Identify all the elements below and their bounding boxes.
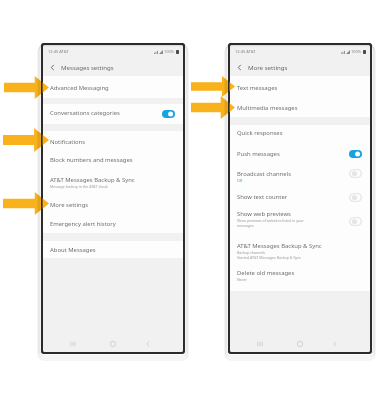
button[interactable]: Recents	[66, 337, 80, 351]
staticText: Push messages	[237, 150, 280, 158]
button[interactable]: Switch on	[162, 110, 175, 118]
button[interactable]: AT&T Messages Backup & Sync	[43, 169, 183, 192]
staticText: 100%	[351, 49, 362, 54]
button[interactable]: Show web previews	[230, 206, 370, 232]
staticText: 100%	[164, 49, 175, 54]
staticText: Never	[237, 277, 247, 282]
button[interactable]: Text messages	[230, 76, 370, 96]
button[interactable]: Show text counter	[230, 186, 370, 206]
staticText: About Messages	[50, 246, 96, 254]
staticText: Show text counter	[237, 193, 288, 201]
button[interactable]: Emergency alert history	[43, 213, 183, 233]
button[interactable]: Switch off	[349, 217, 362, 226]
staticText: Show web previews	[237, 210, 291, 218]
button[interactable]: Broadcast channels	[230, 165, 370, 186]
button[interactable]: Notifications	[43, 131, 183, 150]
staticText: Broadcast channels	[237, 170, 291, 178]
button[interactable]: Back	[233, 61, 246, 74]
button[interactable]: Recents	[253, 337, 267, 351]
staticText: messages	[237, 223, 254, 228]
button[interactable]: Switch off	[349, 193, 362, 202]
staticText: Multimedia messages	[237, 104, 298, 112]
staticText: Notifications	[50, 138, 86, 146]
button[interactable]: About Messages	[43, 241, 183, 258]
button[interactable]: Switch on	[349, 150, 362, 158]
button[interactable]: More settings	[43, 192, 183, 213]
button[interactable]: Back	[328, 337, 342, 351]
staticText: Delete old messages	[237, 269, 295, 277]
button[interactable]: Push messages	[230, 145, 370, 165]
staticText: Backup channels	[237, 250, 266, 255]
staticText: 12:45 AT&T	[48, 49, 69, 54]
button[interactable]: AT&T Messages Backup & Sync	[230, 232, 370, 260]
staticText: Block numbers and messages	[50, 156, 133, 164]
staticText: Emergency alert history	[50, 220, 116, 228]
staticText: Show previews of websites listed in your	[237, 218, 304, 223]
staticText: Started AT&T Messages Backup & Sync	[237, 255, 302, 260]
staticText: 12:45 AT&T	[235, 49, 256, 54]
button[interactable]: Back	[46, 61, 59, 74]
button[interactable]: Delete old messages	[230, 260, 370, 291]
button[interactable]: Home	[293, 337, 307, 351]
staticText: More settings	[248, 63, 288, 71]
button[interactable]: Home	[106, 337, 120, 351]
button[interactable]: Conversations categories	[43, 104, 183, 124]
staticText: AT&T Messages Backup & Sync	[237, 242, 322, 250]
staticText: Messages settings	[61, 63, 114, 71]
staticText: More settings	[50, 201, 89, 209]
staticText: Quick responses	[237, 129, 283, 137]
staticText: Advanced Messaging	[50, 84, 109, 92]
button[interactable]: Block numbers and messages	[43, 150, 183, 169]
staticText: Text messages	[237, 84, 278, 92]
button[interactable]: Quick responses	[230, 125, 370, 145]
staticText: Off	[237, 178, 243, 183]
staticText: Message backup in the AT&T cloud	[50, 184, 108, 189]
button[interactable]: Back	[141, 337, 155, 351]
button[interactable]: Switch off	[349, 169, 362, 178]
button[interactable]: Advanced Messaging	[43, 76, 183, 98]
staticText: Conversations categories	[50, 109, 120, 117]
button[interactable]: Multimedia messages	[230, 96, 370, 117]
staticText: AT&T Messages Backup & Sync	[50, 176, 135, 184]
